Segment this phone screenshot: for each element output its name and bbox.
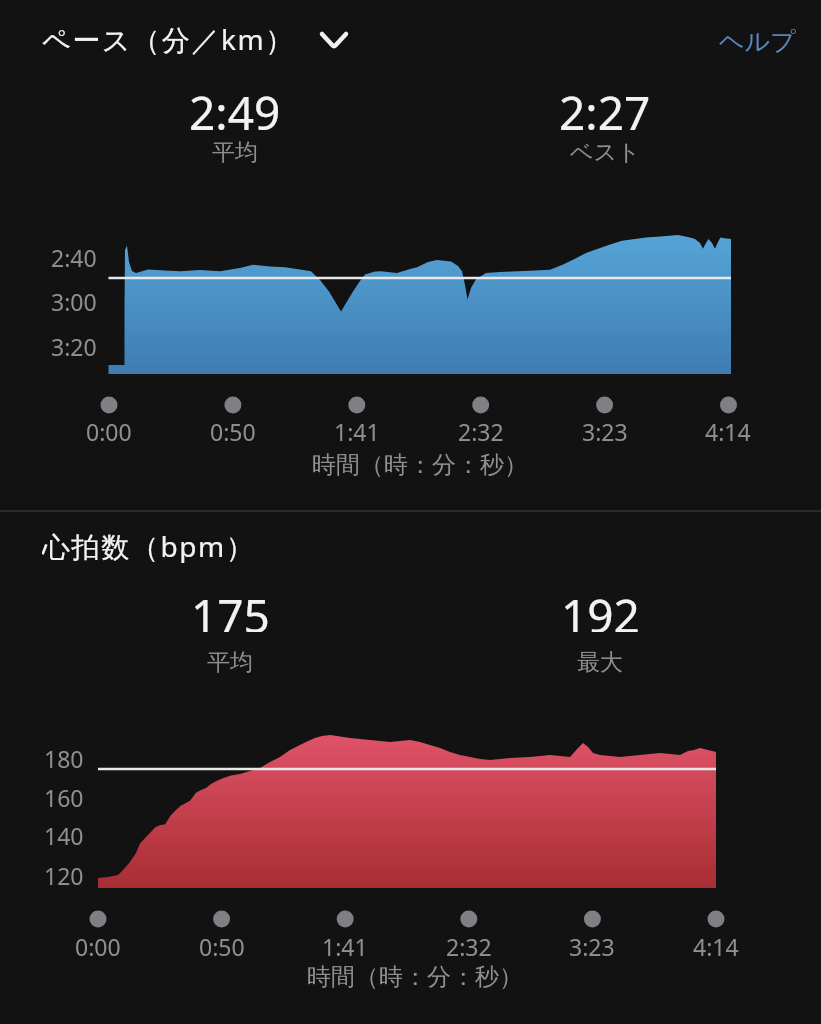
staticText: 平均	[207, 648, 253, 674]
staticText: 175	[191, 584, 270, 632]
staticText: 2:32	[458, 416, 504, 442]
staticText: 140	[44, 820, 84, 846]
staticText: 0:50	[210, 416, 256, 442]
staticText: 2:27	[559, 81, 651, 131]
staticText: 2:40	[51, 242, 97, 268]
staticText: 180	[44, 743, 84, 769]
staticText: 最大	[577, 648, 623, 674]
staticText: 4:14	[693, 931, 739, 957]
staticText: 3:20	[51, 331, 97, 357]
staticText: 0:50	[199, 931, 245, 957]
staticText: 0:00	[86, 416, 132, 442]
staticText: 160	[44, 782, 84, 808]
staticText: 1:41	[322, 931, 368, 957]
staticText: 心拍数（bpm）	[42, 527, 256, 563]
staticText: 平均	[212, 138, 258, 164]
staticText: 時間（時：分：秒）	[307, 962, 523, 992]
staticText: ベスト	[570, 138, 641, 164]
staticText: 3:23	[582, 416, 628, 442]
staticText: ペース（分／km）	[42, 20, 295, 58]
staticText: ヘルプ	[719, 26, 796, 57]
button[interactable]: ヘルプ	[660, 24, 796, 58]
staticText: 1:41	[334, 416, 380, 442]
staticText: 時間（時：分：秒）	[312, 450, 528, 480]
button[interactable]: ペース（分／km）	[42, 20, 332, 58]
staticText: 120	[44, 860, 84, 886]
staticText: 2:49	[189, 81, 281, 131]
staticText: 0:00	[75, 931, 121, 957]
staticText: 3:00	[51, 286, 97, 312]
staticText: 4:14	[705, 416, 751, 442]
staticText: 2:32	[446, 931, 492, 957]
staticText: 192	[561, 584, 640, 632]
staticText: 3:23	[569, 931, 615, 957]
